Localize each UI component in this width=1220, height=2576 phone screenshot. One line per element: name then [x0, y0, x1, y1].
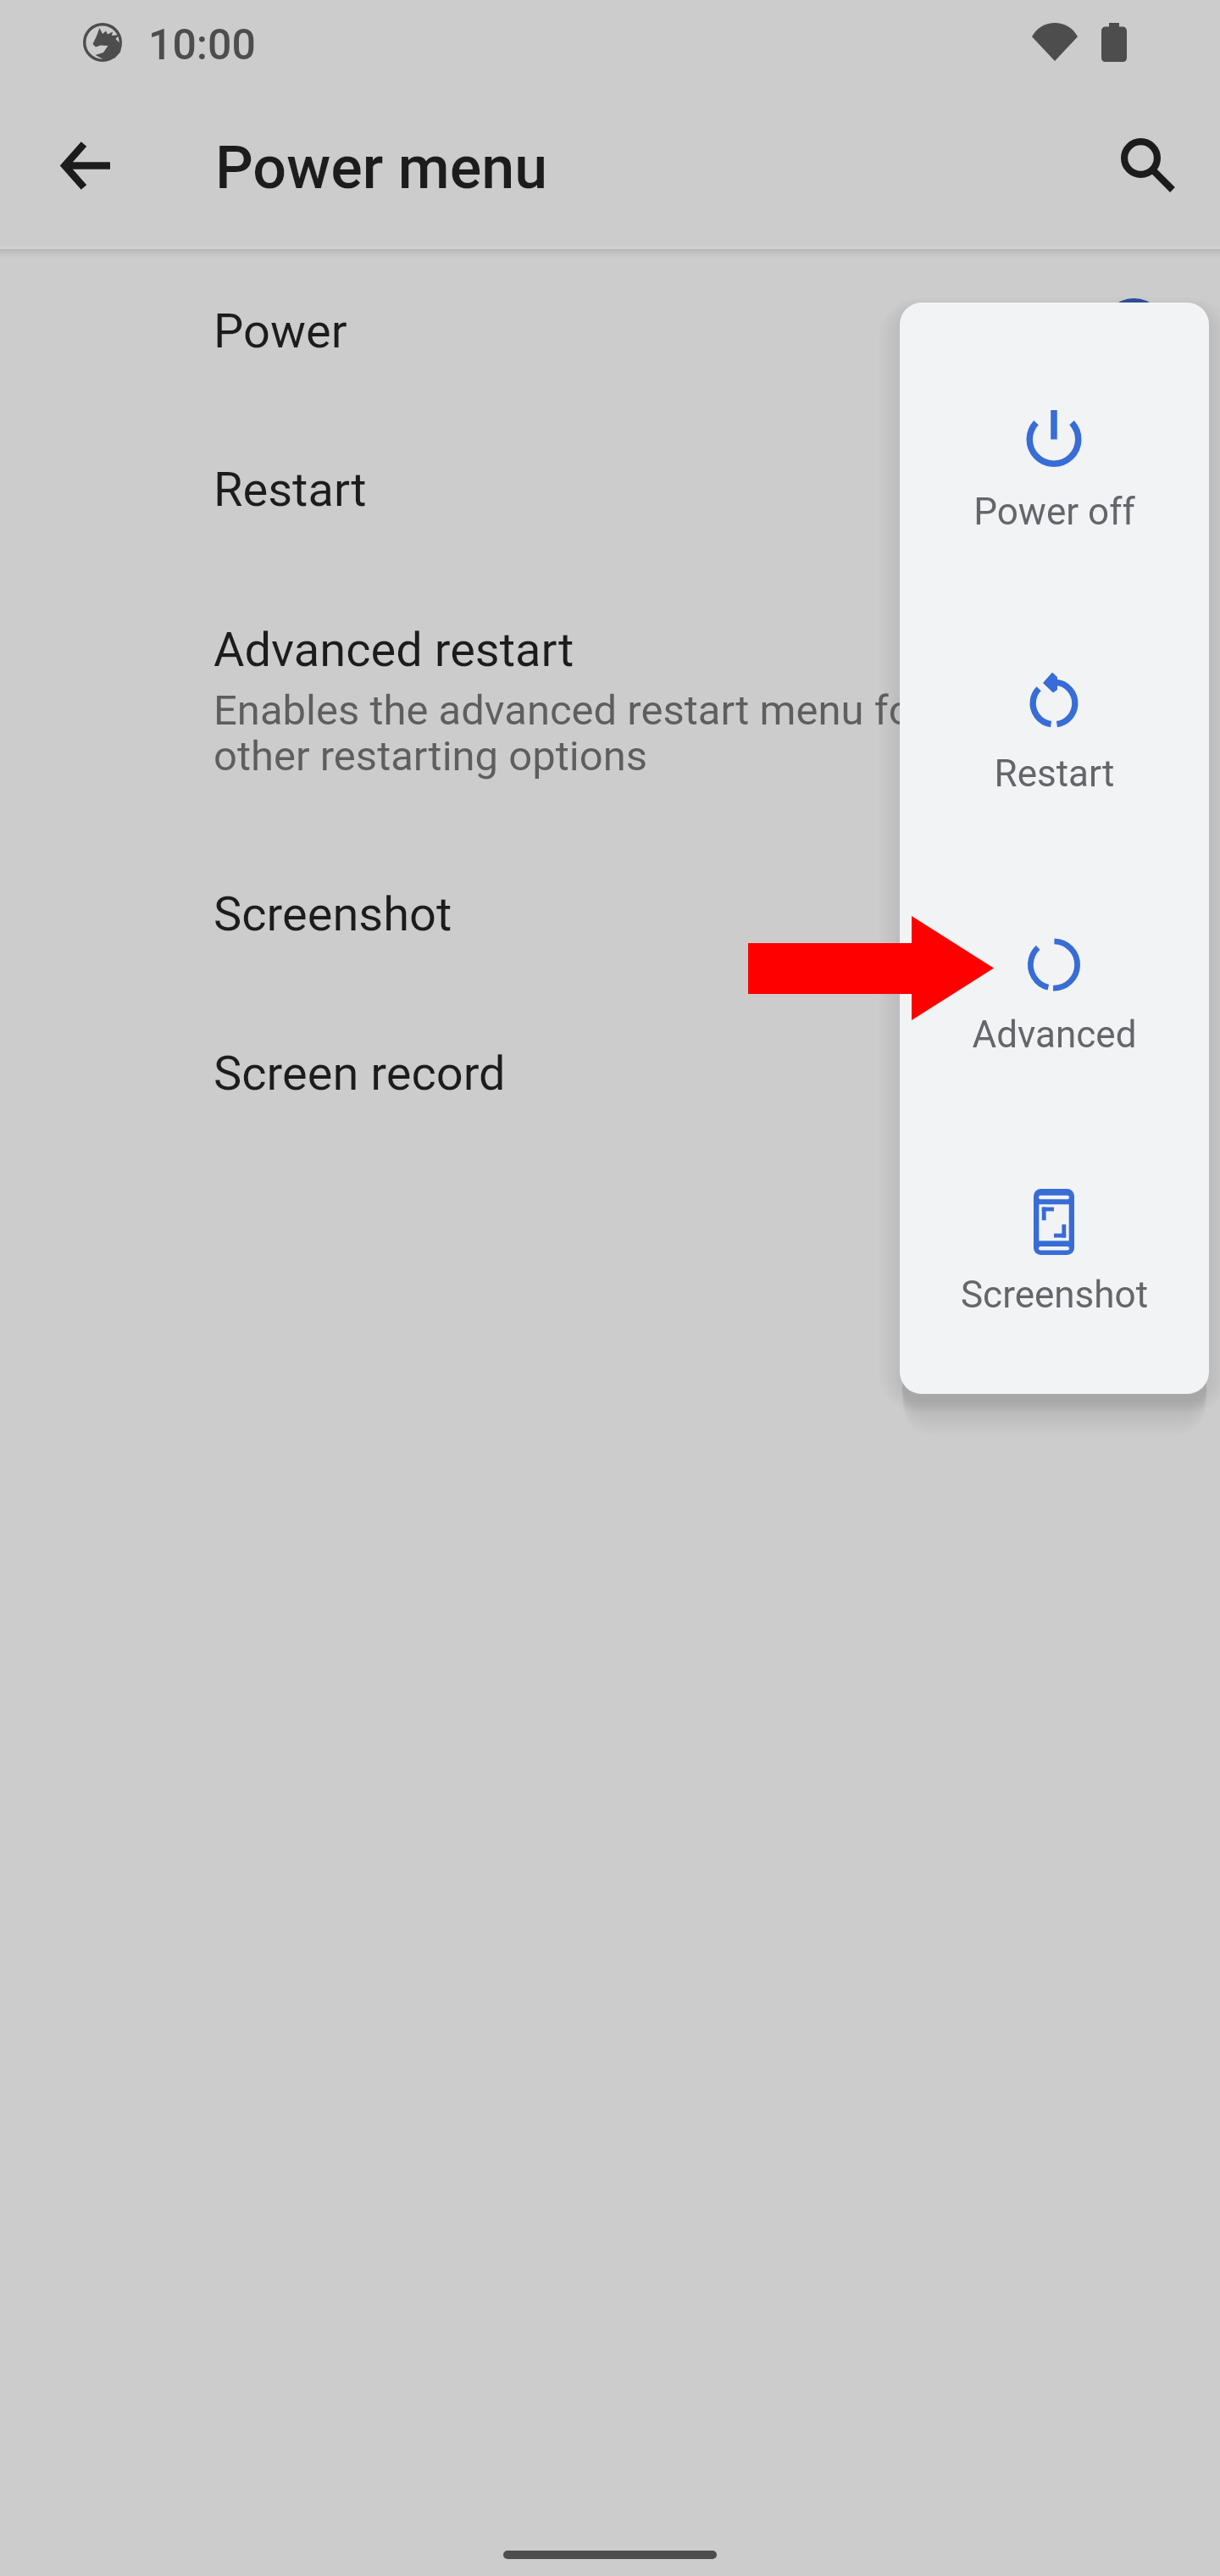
button[interactable]: Screen record [0, 1008, 1220, 1139]
button[interactable]: Power [0, 266, 1220, 397]
button[interactable]: Search [1094, 111, 1202, 219]
button[interactable]: Restart [900, 657, 1209, 852]
staticText: Screen record [213, 1046, 506, 1102]
button[interactable]: Advanced restart [0, 585, 1220, 818]
staticText: Power off [900, 490, 1209, 534]
button[interactable]: Advanced [900, 919, 1209, 1114]
staticText: Advanced restart [213, 622, 574, 678]
button[interactable]: Screenshot [900, 1178, 1209, 1373]
staticText: Screenshot [213, 886, 452, 942]
button[interactable]: Power off [900, 398, 1209, 593]
staticText: Screenshot [900, 1273, 1209, 1317]
staticText: 10:00 [148, 20, 256, 70]
button[interactable]: Toggle [1101, 298, 1167, 364]
other: Pointer [748, 916, 994, 1020]
staticText: Advanced [900, 1013, 1209, 1057]
staticText: Enables the advanced restart menu for ot… [213, 686, 983, 780]
staticText: Power [213, 303, 347, 359]
button[interactable]: Navigate up [33, 112, 141, 220]
staticText: Power menu [215, 133, 548, 203]
staticText: Restart [213, 462, 367, 518]
button[interactable]: Screenshot [0, 849, 1220, 980]
button[interactable]: Restart [0, 425, 1220, 555]
staticText: Restart [900, 752, 1209, 796]
